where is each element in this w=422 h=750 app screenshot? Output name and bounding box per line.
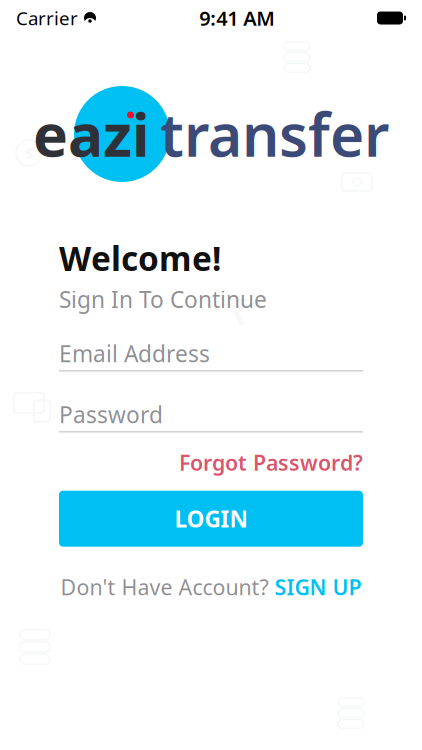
staticText: Password [59, 399, 163, 429]
staticText: LOGIN [174, 504, 247, 534]
staticText: SIGN UP [274, 573, 361, 601]
staticText: Forgot Password? [179, 448, 363, 477]
staticText: Welcome! [59, 236, 221, 280]
staticText: $ [25, 143, 33, 163]
staticText: eazi [33, 95, 150, 173]
staticText: Carrier [16, 6, 78, 30]
button[interactable]: LOGIN [59, 491, 363, 547]
staticText: 9:41 AM [199, 5, 275, 31]
button[interactable]: Don't Have Account? [0, 565, 422, 609]
staticText: transfer [160, 95, 389, 173]
staticText: Sign In To Continue [59, 284, 267, 314]
staticText: ₹ [231, 288, 251, 334]
button[interactable]: Forgot Password? [179, 442, 363, 483]
staticText: Email Address [59, 338, 210, 368]
staticText: Don't Have Account? [60, 573, 268, 601]
